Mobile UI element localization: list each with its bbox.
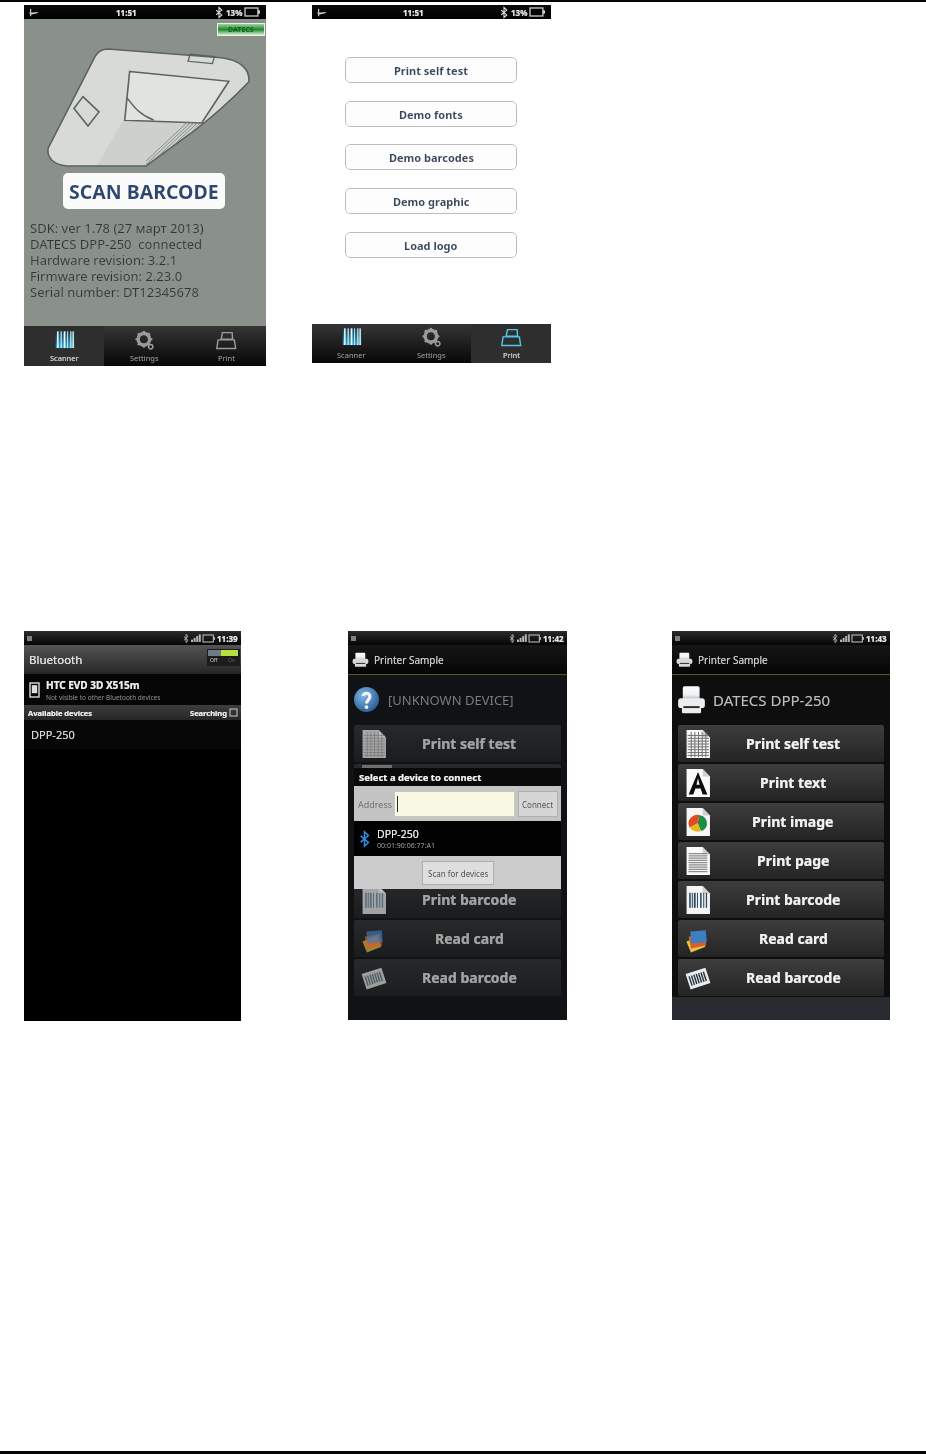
staticText: Serial number: DT12345678 [30,283,199,301]
staticText: Connect [522,799,554,810]
button[interactable]: Load logo [345,232,517,258]
staticText: 11:42 [543,633,564,644]
staticText: Demo graphic [393,194,470,209]
button[interactable]: Print self test [345,57,517,83]
button[interactable]: DATECS DPP-250 [672,675,890,724]
staticText: 11:39 [217,633,238,644]
button[interactable]: Print image [678,803,884,840]
button[interactable] [394,791,515,817]
staticText: HTC EVD 3D X515m [46,678,140,692]
button[interactable]: Print page [678,842,884,879]
staticText: Settings [417,350,446,360]
button[interactable]: Print self test [678,725,884,762]
button[interactable]: SCAN BARCODE [63,173,225,209]
button[interactable]: Connect [518,791,558,817]
staticText: Demo fonts [399,107,463,122]
button[interactable]: Demo barcodes [345,144,517,170]
staticText: Demo barcodes [389,150,474,165]
staticText: Scan for devices [428,868,489,879]
button[interactable]: HTC EVD 3D X515m [24,674,241,705]
staticText: Scanner [337,350,366,360]
button[interactable]: Scan for devices [422,861,494,885]
button[interactable]: Print image [354,803,561,840]
staticText: Print barcode [746,890,841,909]
staticText: 11:43 [866,633,887,644]
staticText: 00:01:90:06:77:A1 [377,841,435,851]
staticText: Print barcode [422,890,517,909]
staticText: DATECS DPP-250 connected [30,235,203,253]
staticText: Print text [760,773,827,792]
button[interactable]: Read barcode [678,959,884,996]
staticText: 13% [226,7,243,18]
staticText: Read card [435,929,504,948]
staticText: Off [210,657,218,664]
staticText: Print image [752,812,834,831]
staticText: DPP-250 [31,727,75,742]
staticText: Searching [190,708,227,718]
staticText: Print [503,350,520,360]
staticText: Print page [757,851,830,870]
button[interactable]: Print text [354,764,561,801]
staticText: Bluetooth [29,652,83,668]
staticText: On [228,657,235,664]
staticText: Print text [436,773,503,792]
staticText: DATECS DPP-250 [713,690,831,710]
staticText: Not visible to other Bluetooth devices [46,693,161,702]
staticText: Load logo [404,238,458,253]
staticText: DATECS [228,25,254,35]
staticText: Printer Sample [374,653,444,667]
button[interactable]: Settings [391,324,471,363]
button[interactable]: Print page [354,842,561,879]
button[interactable]: Read barcode [354,959,561,996]
staticText: Address [358,798,393,810]
staticText: Printer Sample [698,653,768,667]
button[interactable]: Scanner [24,326,104,366]
other: Unknown device [354,687,379,712]
button[interactable]: Print [185,326,266,366]
button[interactable]: Print [471,324,551,363]
button[interactable]: Unknown device [348,675,567,724]
button[interactable]: Scanner [312,324,391,363]
staticText: Read barcode [422,968,517,987]
staticText: 11:51 [116,7,137,18]
staticText: Read barcode [746,968,841,987]
staticText: 13% [511,7,528,18]
staticText: Print [218,353,235,363]
staticText: Print self test [394,63,468,78]
button[interactable]: Print self test [354,725,561,762]
staticText: Read card [759,929,828,948]
button[interactable]: DPP-250 [354,821,561,856]
button[interactable]: Print barcode [354,881,561,918]
staticText: Select a device to connect [359,771,482,784]
button[interactable]: DPP-250 [24,720,241,749]
staticText: DPP-250 [377,827,419,841]
staticText: Print self test [422,734,517,753]
staticText: [UNKNOWN DEVICE] [388,691,514,709]
button[interactable]: Print text [678,764,884,801]
staticText: Firmware revision: 2.23.0 [30,267,183,285]
staticText: Settings [130,353,159,363]
staticText: SDK: ver 1.78 (27 март 2013) [30,219,204,237]
button[interactable]: Print barcode [678,881,884,918]
staticText: Hardware revision: 3.2.1 [30,251,178,269]
button[interactable]: Demo graphic [345,188,517,214]
staticText: Print page [433,851,506,870]
staticText: Print self test [746,734,841,753]
button[interactable]: Settings [104,326,185,366]
staticText: Available devices [28,708,93,718]
staticText: 11:51 [403,7,424,18]
staticText: SCAN BARCODE [69,178,219,205]
button[interactable]: Demo fonts [345,101,517,127]
staticText: Print image [429,812,511,831]
button[interactable]: Read card [678,920,884,957]
button[interactable]: Read card [354,920,561,957]
staticText: Scanner [50,353,79,363]
